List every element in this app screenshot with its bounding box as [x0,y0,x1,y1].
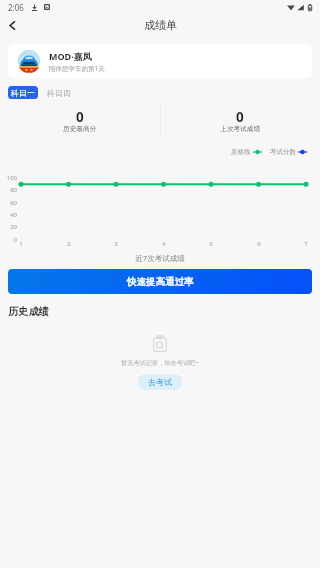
staticText: 0 [0,236,17,244]
button[interactable]: 快速提高通过率 [8,269,312,294]
staticText: 历史成绩 [8,305,49,318]
staticText: 快速提高通过率 [127,276,194,288]
staticText: 0 [76,108,84,126]
button[interactable]: MOD·嘉凤 [8,44,312,78]
staticText: 4 [158,240,170,248]
staticText: 上次考试成绩 [220,125,261,133]
staticText: 成绩单 [144,18,177,32]
staticText: 历史最高分 [63,125,97,133]
staticText: 科目四 [47,88,71,98]
staticText: 1 [15,240,27,248]
staticText: 科目一 [11,88,35,98]
staticText: 3 [110,240,122,248]
staticText: 暂无考试记录，快去考试吧~ [121,358,199,366]
staticText: 40 [0,211,17,219]
button[interactable]: 科目一 [8,86,38,99]
staticText: 考试分数 [270,148,296,156]
staticText: 2:06 [8,2,24,13]
staticText: 20 [0,223,17,231]
staticText: 陪伴您学车的第1天 [49,64,105,73]
staticText: 去考试 [148,377,172,387]
button[interactable]: 去考试 [138,374,182,390]
staticText: 2 [63,240,75,248]
staticText: 5 [205,240,217,248]
staticText: 100 [0,174,17,182]
staticText: 60 [0,199,17,207]
button[interactable]: Back [2,15,22,35]
staticText: 近7次考试成绩 [0,253,320,263]
staticText: 0 [236,108,244,126]
staticText: 6 [253,240,265,248]
button[interactable]: 科目四 [44,86,73,99]
staticText: MOD·嘉凤 [49,50,92,62]
staticText: 80 [0,186,17,194]
staticText: 7 [300,240,312,248]
staticText: 及格线 [231,148,251,156]
